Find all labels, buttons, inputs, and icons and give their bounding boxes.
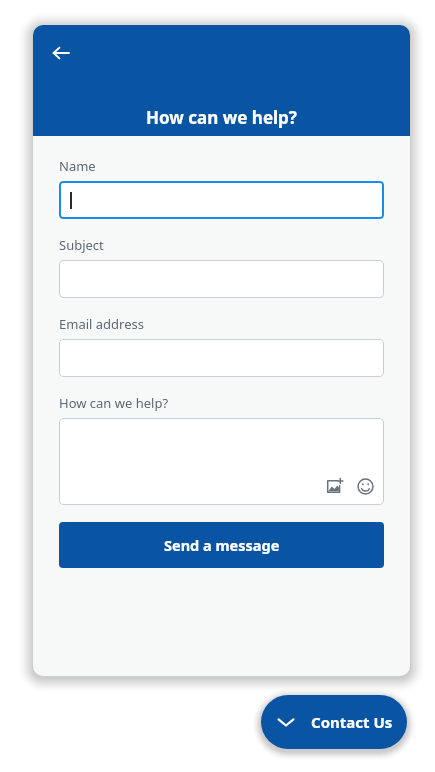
staticText: Name	[59, 157, 96, 175]
button[interactable]	[59, 339, 384, 377]
staticText: Email address	[59, 315, 144, 333]
button[interactable]: Insert emoji	[354, 475, 376, 497]
button[interactable]: Back	[41, 33, 81, 73]
button[interactable]: Add image	[59, 418, 384, 505]
button[interactable]: Contact Us	[261, 695, 407, 749]
button[interactable]: Send a message	[59, 522, 384, 568]
button[interactable]: Add image	[323, 475, 345, 497]
staticText: Send a message	[164, 535, 280, 555]
staticText: Subject	[59, 236, 104, 254]
staticText: How can we help?	[33, 106, 410, 129]
button[interactable]	[59, 260, 384, 298]
staticText: How can we help?	[59, 394, 169, 412]
staticText: Contact Us	[311, 712, 393, 732]
button[interactable]	[59, 181, 384, 219]
